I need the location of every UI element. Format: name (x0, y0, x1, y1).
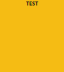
staticText: TEST (26, 0, 38, 7)
